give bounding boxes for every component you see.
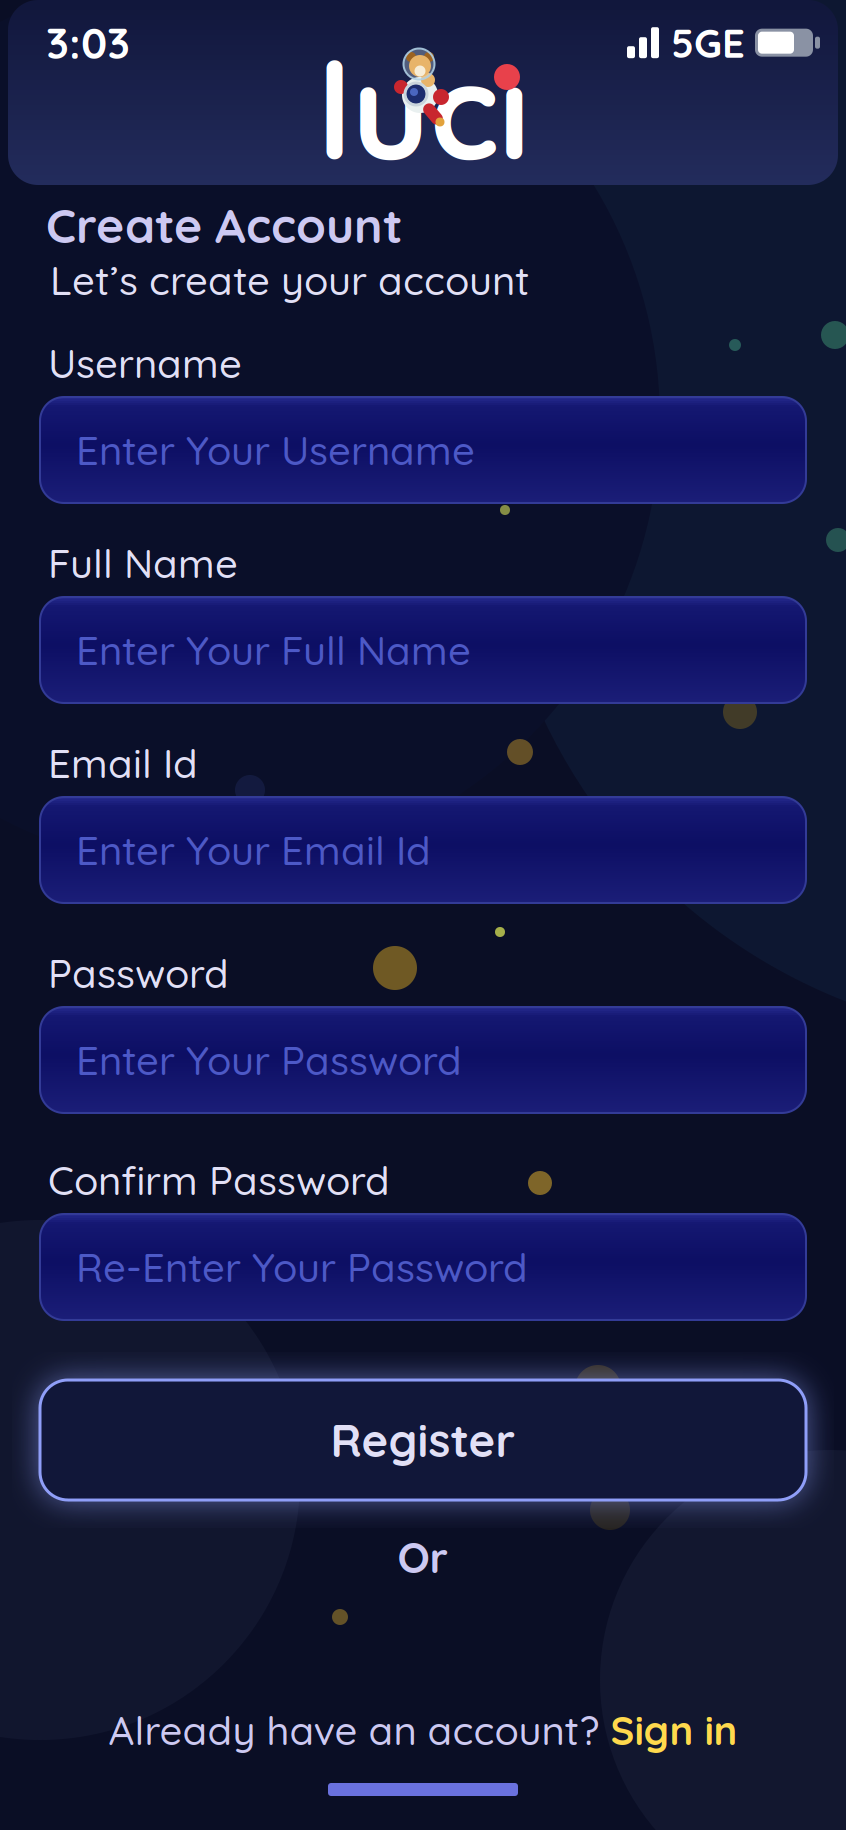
staticText: Or [397, 1530, 448, 1584]
button[interactable]: Sign in [610, 1705, 737, 1755]
button[interactable]: Re-Enter Your Password [40, 1214, 806, 1320]
staticText: Enter Your Email Id [76, 825, 431, 875]
staticText: Create Account [46, 195, 403, 255]
staticText: Enter Your Password [76, 1035, 462, 1085]
button[interactable]: Register [40, 1380, 806, 1500]
staticText: Full Name [48, 538, 238, 588]
button[interactable]: Enter Your Full Name [40, 597, 806, 703]
staticText: 5GE [671, 18, 745, 68]
staticText: Confirm Password [48, 1155, 390, 1205]
staticText: Already have an account? [108, 1705, 610, 1755]
staticText: Let’s create your account [50, 255, 530, 305]
staticText: Username [48, 338, 242, 388]
staticText: Re-Enter Your Password [76, 1242, 528, 1292]
staticText: Enter Your Username [76, 425, 475, 475]
button[interactable]: Enter Your Username [40, 397, 806, 503]
staticText: Email Id [48, 738, 198, 788]
staticText: Password [48, 948, 229, 998]
staticText: 3:03 [46, 16, 130, 69]
staticText: Register [330, 1412, 515, 1468]
staticText: lucı [316, 26, 529, 193]
staticText: Sign in [610, 1705, 737, 1755]
button[interactable]: Enter Your Password [40, 1007, 806, 1113]
staticText: Enter Your Full Name [76, 625, 471, 675]
button[interactable]: Enter Your Email Id [40, 797, 806, 903]
